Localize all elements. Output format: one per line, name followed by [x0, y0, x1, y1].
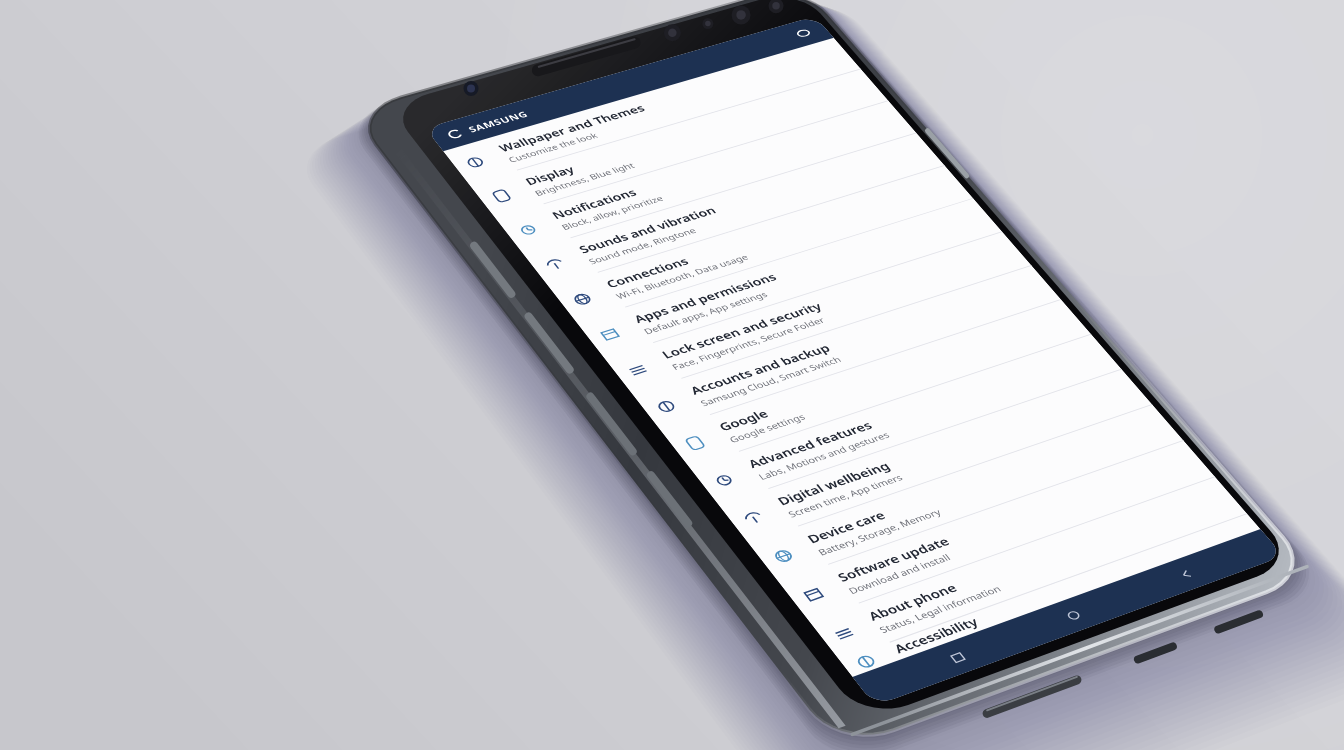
button[interactable]: Sounds and vibration — [0, 174, 372, 221]
button[interactable]: Display — [0, 80, 372, 127]
button[interactable]: Notifications — [0, 127, 372, 174]
